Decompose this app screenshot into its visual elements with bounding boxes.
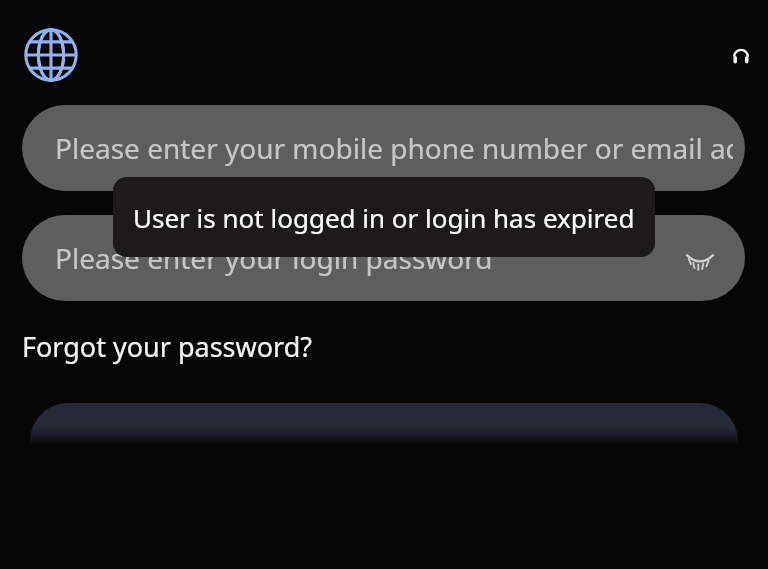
button[interactable]: Show password [677,235,723,281]
button[interactable]: Please enter your login password [22,215,745,301]
button[interactable]: Log in [30,403,738,479]
button[interactable]: Change language [21,25,81,85]
staticText: Please enter your mobile phone number or… [55,129,733,167]
staticText: User is not logged in or login has expir… [133,200,635,235]
button[interactable]: Customer support [726,42,756,72]
button[interactable]: Forgot your password? [14,322,321,371]
staticText: Forgot your password? [22,328,313,365]
staticText: Please enter your login password [55,239,493,277]
button[interactable]: Please enter your mobile phone number or… [22,105,745,191]
